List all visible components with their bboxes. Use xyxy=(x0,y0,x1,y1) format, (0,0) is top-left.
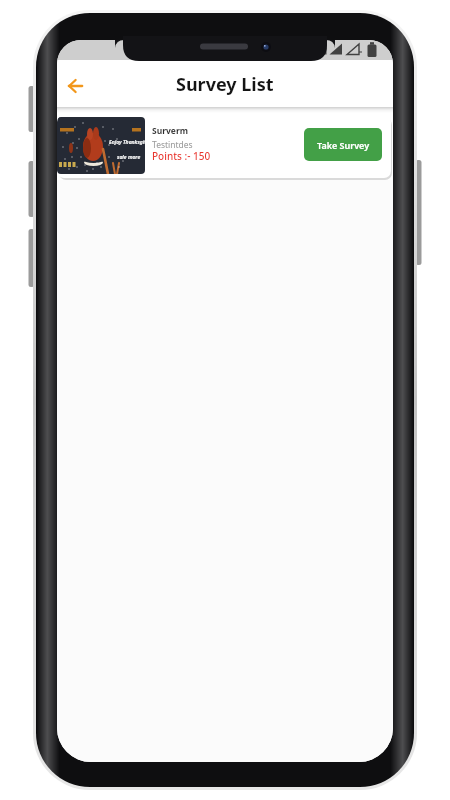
button[interactable]: Enjoy Thanksgiving xyxy=(57,115,391,178)
staticText: Points :- 150 xyxy=(152,149,211,163)
button[interactable] xyxy=(60,71,90,101)
staticText: sale more xyxy=(117,154,141,161)
staticText: Testintdes xyxy=(152,139,193,151)
button[interactable]: Take Survey xyxy=(304,128,382,161)
staticText: Surverm xyxy=(152,125,189,137)
staticText: Take Survey xyxy=(317,139,370,151)
staticText: Survey List xyxy=(176,72,274,97)
staticText: Enjoy Thanksgiving xyxy=(109,139,145,146)
